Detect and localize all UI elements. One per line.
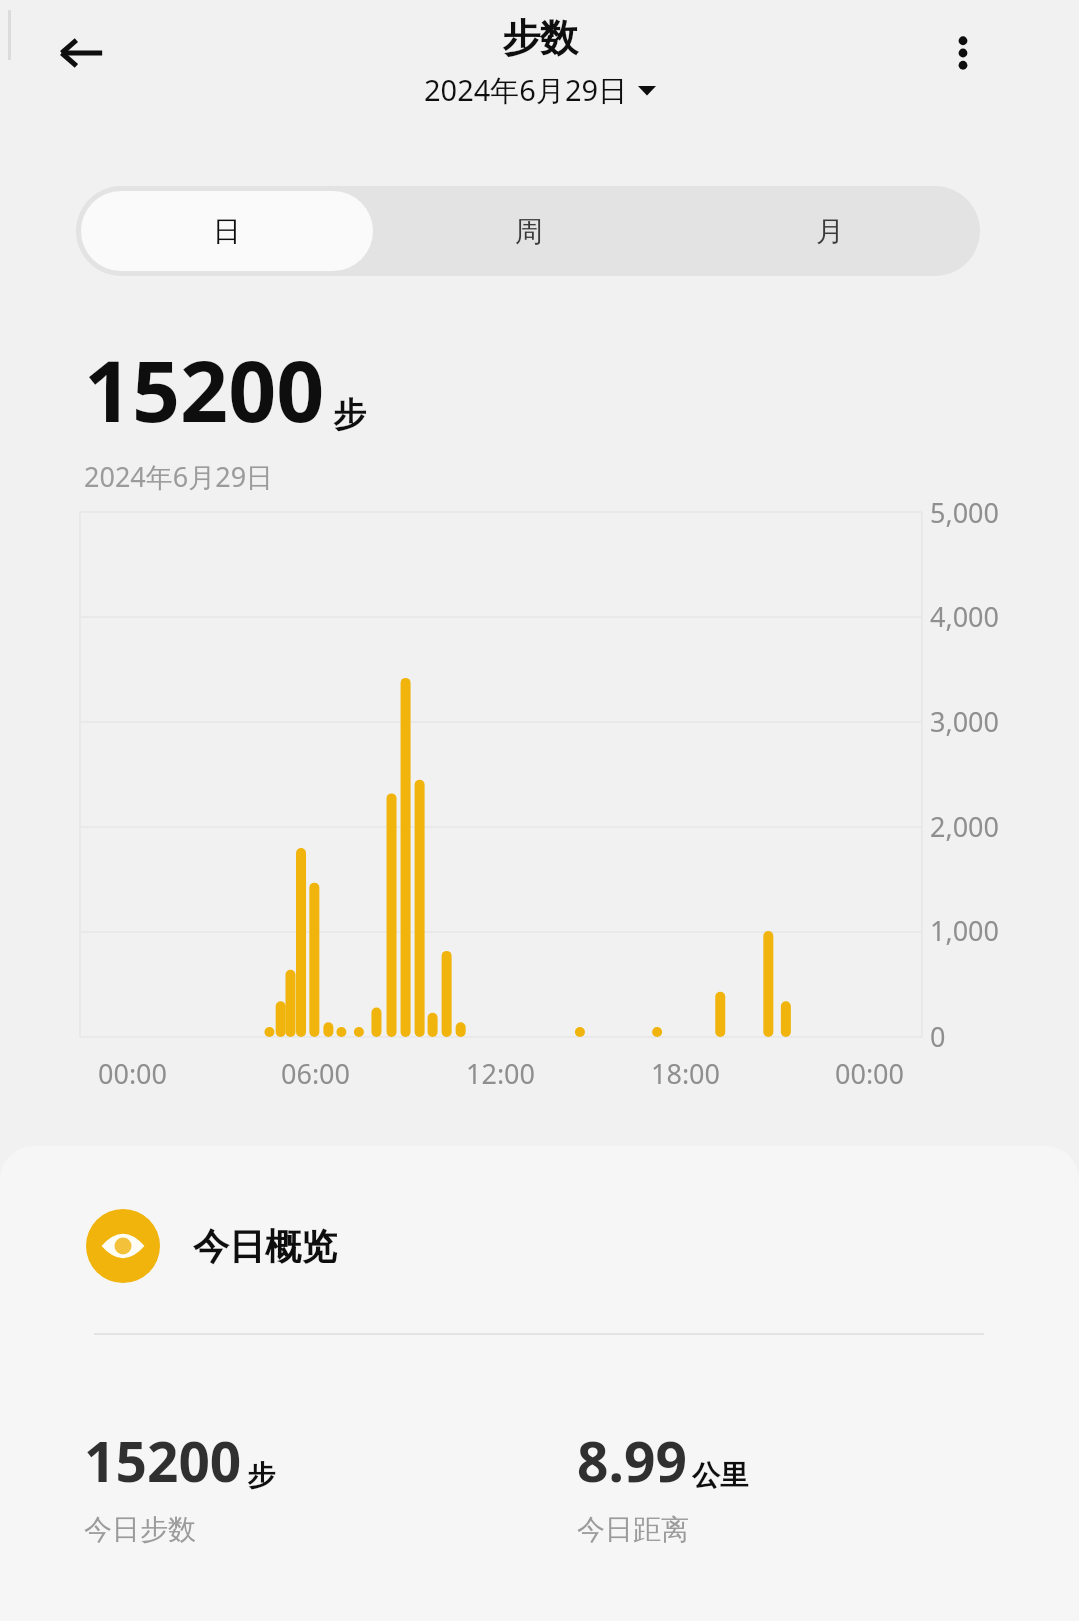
staticText: 月 (816, 214, 844, 249)
staticText: 00:00 (98, 1055, 168, 1092)
staticText: 今日步数 (84, 1512, 196, 1547)
button[interactable]: 2024年6月29日 (420, 68, 660, 112)
button[interactable]: 日 (81, 191, 373, 271)
button[interactable]: 15200 (84, 1423, 539, 1547)
button[interactable]: 月 (684, 191, 975, 271)
staticText: 0 (930, 1018, 946, 1055)
staticText: 4,000 (930, 598, 1000, 635)
button[interactable]: Back (48, 20, 114, 86)
staticText: 12:00 (466, 1055, 536, 1092)
button[interactable]: 今日概览 (86, 1209, 337, 1283)
staticText: 步数 (502, 14, 578, 62)
button[interactable]: 8.99 (577, 1423, 1079, 1547)
staticText: 1,000 (930, 912, 1000, 949)
staticText: 日 (213, 214, 241, 249)
staticText: 5,000 (930, 494, 1000, 531)
staticText: 15200 (84, 332, 325, 446)
staticText: 18:00 (651, 1055, 721, 1092)
staticText: 公里 (692, 1458, 748, 1493)
staticText: 2024年6月29日 (424, 70, 628, 110)
staticText: 00:00 (835, 1055, 905, 1092)
staticText: 8.99 (577, 1423, 687, 1498)
staticText: 15200 (84, 1423, 242, 1498)
staticText: 06:00 (281, 1055, 351, 1092)
staticText: 周 (515, 214, 543, 249)
staticText: 步 (247, 1458, 275, 1493)
staticText: 今日概览 (193, 1224, 337, 1269)
staticText: 今日距离 (577, 1512, 689, 1547)
staticText: 2024年6月29日 (84, 458, 274, 495)
button[interactable]: More options (930, 20, 996, 86)
staticText: 2,000 (930, 808, 1000, 845)
staticText: 3,000 (930, 703, 1000, 740)
staticText: 步 (333, 394, 366, 436)
button[interactable]: 周 (383, 191, 674, 271)
